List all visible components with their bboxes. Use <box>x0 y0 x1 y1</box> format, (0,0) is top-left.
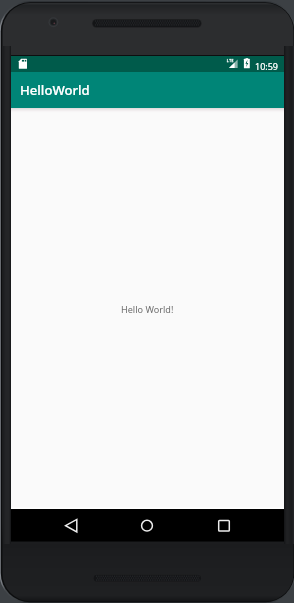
staticText: 10:59 <box>255 60 279 72</box>
button[interactable]: Home <box>131 509 163 541</box>
button[interactable]: Recents <box>208 509 240 541</box>
staticText: HelloWorld <box>20 81 90 99</box>
button[interactable]: Back <box>55 509 87 541</box>
staticText: Hello World! <box>121 303 174 315</box>
